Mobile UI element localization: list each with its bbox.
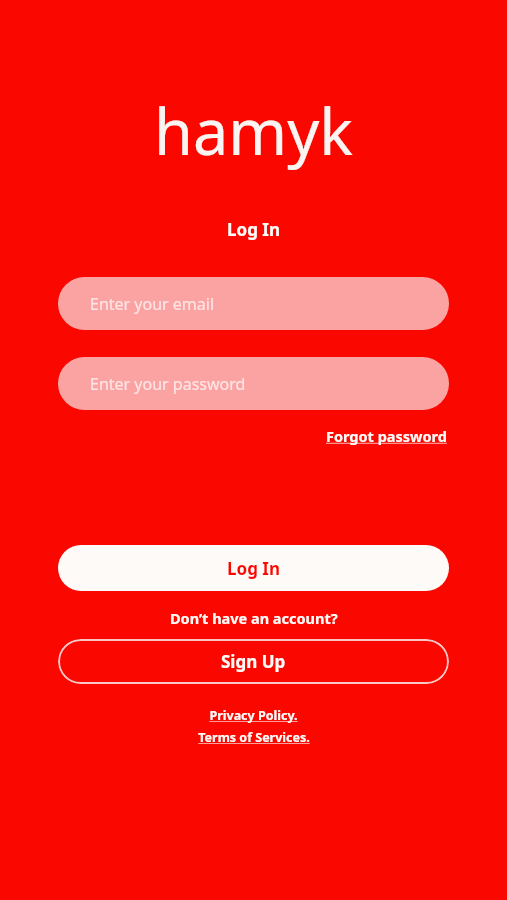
staticText: Log In: [227, 557, 280, 580]
staticText: Forgot password: [326, 426, 447, 446]
staticText: Don’t have an account?: [170, 608, 338, 628]
staticText: Enter your email: [90, 293, 215, 315]
button[interactable]: Enter your password: [58, 357, 449, 410]
staticText: Terms of Services.: [198, 729, 310, 746]
button[interactable]: Privacy Policy.: [205, 706, 302, 725]
button[interactable]: Enter your email: [58, 277, 449, 330]
staticText: Privacy Policy.: [209, 707, 298, 724]
button[interactable]: Sign Up: [58, 639, 449, 684]
button[interactable]: Terms of Services.: [194, 728, 314, 747]
staticText: Enter your password: [90, 373, 246, 395]
staticText: Sign Up: [221, 650, 286, 673]
staticText: hamyk: [154, 88, 353, 174]
button[interactable]: Forgot password: [324, 424, 449, 448]
staticText: Log In: [227, 218, 280, 241]
button[interactable]: Log In: [58, 545, 449, 591]
